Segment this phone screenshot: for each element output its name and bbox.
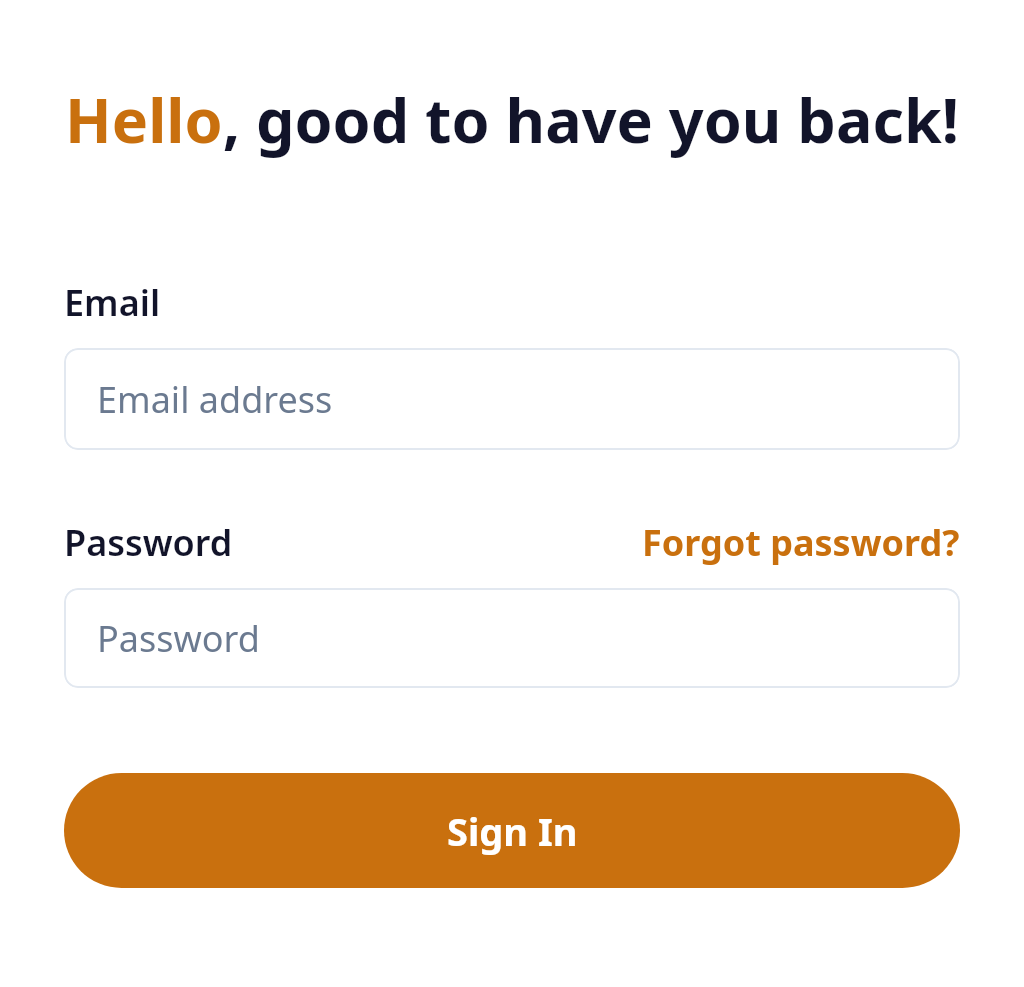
staticText: Password xyxy=(64,518,233,567)
staticText: Forgot password? xyxy=(642,518,960,567)
staticText: Email address xyxy=(97,375,333,424)
button[interactable]: Email address xyxy=(64,348,960,450)
button[interactable]: Password xyxy=(64,588,960,688)
button[interactable]: Forgot password? xyxy=(642,518,960,567)
staticText: Hello, good to have you back! xyxy=(64,78,960,161)
staticText: Sign In xyxy=(447,805,578,857)
button[interactable]: Sign In xyxy=(64,773,960,888)
staticText: Password xyxy=(97,614,260,663)
staticText: Email xyxy=(64,278,161,327)
